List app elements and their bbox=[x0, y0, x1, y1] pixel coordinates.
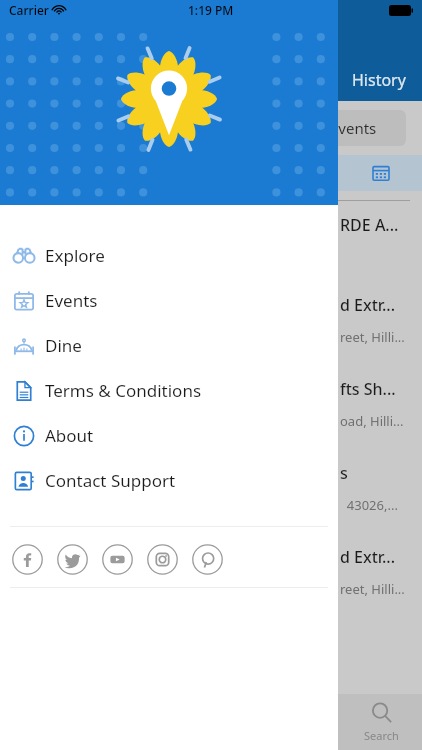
staticText: Dine bbox=[45, 334, 82, 357]
staticText: reet, Hilli... bbox=[340, 328, 405, 346]
staticText: Carrier bbox=[9, 2, 49, 18]
staticText: RDE A... bbox=[340, 214, 399, 236]
staticText: Events bbox=[45, 289, 98, 312]
button[interactable]: RDE A... bbox=[340, 214, 399, 236]
button[interactable]: Pinterest bbox=[192, 544, 223, 575]
button[interactable]: d Extr... bbox=[340, 294, 405, 346]
button[interactable]: Events bbox=[16, 110, 406, 146]
button[interactable]: Terms & Conditions bbox=[0, 368, 338, 413]
staticText: fts Sh... bbox=[340, 378, 396, 400]
button[interactable]: Instagram bbox=[147, 544, 178, 575]
staticText: oad, Hilli... bbox=[340, 412, 404, 430]
staticText: Terms & Conditions bbox=[45, 379, 202, 402]
staticText: Events bbox=[330, 118, 377, 138]
staticText: reet, Hilli... bbox=[340, 580, 405, 598]
staticText: Search bbox=[364, 728, 399, 743]
button[interactable]: About bbox=[0, 413, 338, 458]
button[interactable]: Date filter bbox=[0, 155, 422, 191]
staticText: 43026,... bbox=[340, 496, 398, 514]
staticText: d Extr... bbox=[340, 294, 396, 316]
staticText: About bbox=[45, 424, 94, 447]
button[interactable]: Twitter bbox=[57, 544, 88, 575]
staticText: 1:19 PM bbox=[188, 2, 234, 18]
staticText: Explore bbox=[45, 244, 105, 267]
button[interactable]: d Extr... bbox=[340, 546, 405, 598]
button[interactable]: YouTube bbox=[102, 544, 133, 575]
button[interactable]: Contact Support bbox=[0, 458, 338, 503]
staticText: d Extr... bbox=[340, 546, 396, 568]
button[interactable]: s bbox=[340, 462, 398, 514]
button[interactable]: fts Sh... bbox=[340, 378, 404, 430]
staticText: History bbox=[352, 69, 406, 91]
staticText: Contact Support bbox=[45, 469, 176, 492]
button[interactable]: Dine bbox=[0, 323, 338, 368]
button[interactable]: Explore bbox=[0, 233, 338, 278]
button[interactable]: Facebook bbox=[12, 544, 43, 575]
staticText: s bbox=[340, 462, 348, 484]
button[interactable]: Search bbox=[364, 701, 399, 743]
button[interactable]: Events bbox=[0, 278, 338, 323]
